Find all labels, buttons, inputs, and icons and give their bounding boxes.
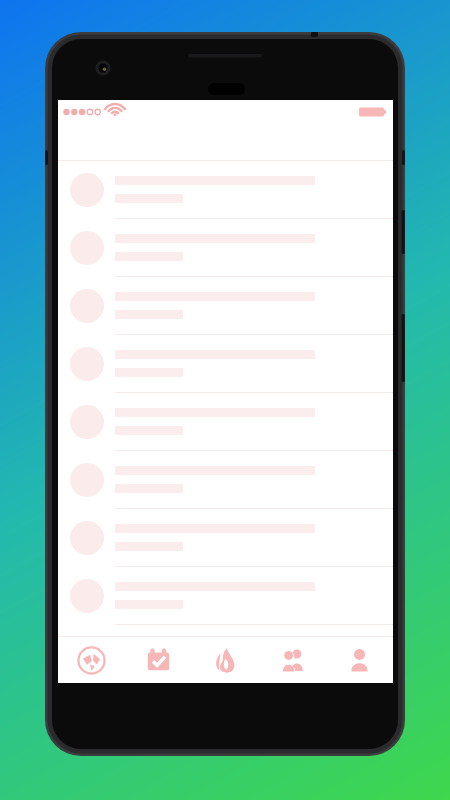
- button[interactable]: Discover: [58, 637, 125, 683]
- button[interactable]: Events: [125, 637, 192, 683]
- button[interactable]: [58, 393, 393, 451]
- button[interactable]: [58, 219, 393, 277]
- button[interactable]: [58, 567, 393, 625]
- button[interactable]: [58, 451, 393, 509]
- button[interactable]: Profile: [326, 637, 393, 683]
- button[interactable]: Trending: [192, 637, 259, 683]
- button[interactable]: [58, 335, 393, 393]
- button[interactable]: [58, 509, 393, 567]
- button[interactable]: Groups: [259, 637, 326, 683]
- button[interactable]: [58, 161, 393, 219]
- button[interactable]: [58, 277, 393, 335]
